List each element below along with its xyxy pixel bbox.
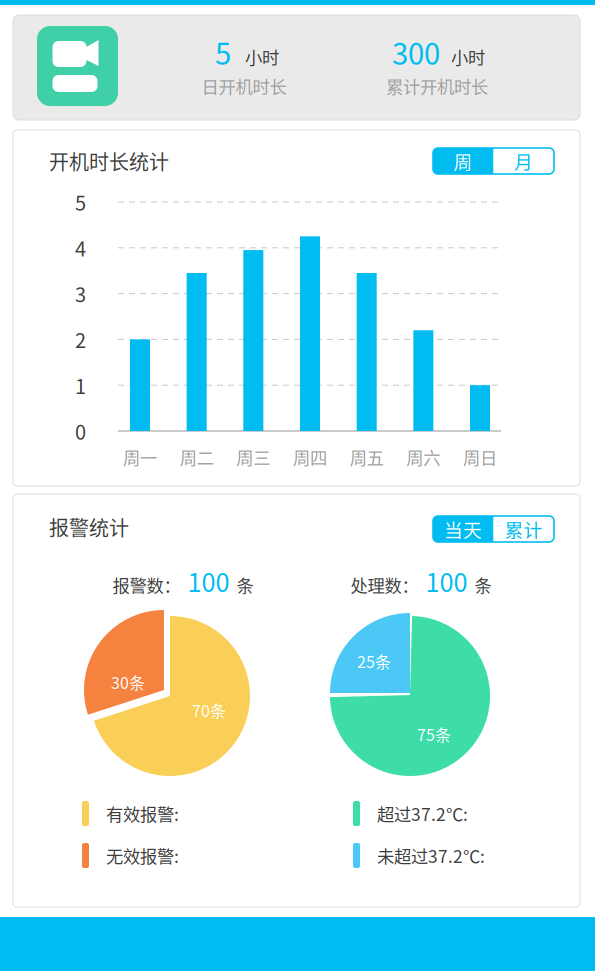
- staticText: 100: [187, 563, 229, 599]
- staticText: 0: [75, 416, 86, 445]
- staticText: 无效报警:: [106, 843, 179, 868]
- staticText: 累计开机时长: [386, 73, 488, 99]
- staticText: 75条: [417, 722, 451, 746]
- staticText: 周二: [180, 444, 214, 470]
- staticText: 小时: [451, 44, 485, 69]
- staticText: 处理数：: [350, 572, 418, 597]
- staticText: 5: [75, 187, 86, 216]
- staticText: 周四: [293, 444, 327, 470]
- staticText: 条: [236, 572, 253, 597]
- button[interactable]: 累计: [493, 516, 554, 542]
- button[interactable]: 周: [433, 148, 493, 174]
- staticText: 300: [392, 31, 440, 73]
- staticText: 2: [75, 325, 86, 354]
- staticText: 周日: [463, 444, 497, 470]
- staticText: 5: [215, 31, 231, 73]
- staticText: 月: [514, 147, 533, 174]
- button[interactable]: 月: [493, 148, 554, 174]
- staticText: 报警数：: [112, 572, 180, 597]
- staticText: 开机时长统计: [49, 146, 169, 175]
- staticText: 条: [474, 572, 491, 597]
- button[interactable]: 当天: [433, 516, 493, 542]
- staticText: 小时: [245, 44, 279, 69]
- staticText: 有效报警:: [106, 801, 179, 826]
- staticText: 1: [75, 371, 86, 400]
- staticText: 100: [425, 563, 467, 599]
- staticText: 未超过37.2℃:: [377, 843, 485, 868]
- staticText: 70条: [192, 698, 226, 722]
- staticText: 超过37.2℃:: [377, 801, 468, 826]
- staticText: 周六: [406, 444, 440, 470]
- staticText: 当天: [444, 515, 482, 542]
- staticText: 日开机时长: [201, 73, 286, 99]
- staticText: 30条: [111, 670, 145, 694]
- staticText: 周五: [350, 444, 384, 470]
- staticText: 报警统计: [49, 512, 129, 541]
- staticText: 周: [454, 147, 473, 174]
- staticText: 累计: [505, 515, 543, 542]
- staticText: 周一: [123, 444, 157, 470]
- staticText: 周三: [236, 444, 270, 470]
- staticText: 4: [75, 233, 86, 262]
- staticText: 25条: [357, 649, 391, 673]
- staticText: 3: [75, 279, 86, 308]
